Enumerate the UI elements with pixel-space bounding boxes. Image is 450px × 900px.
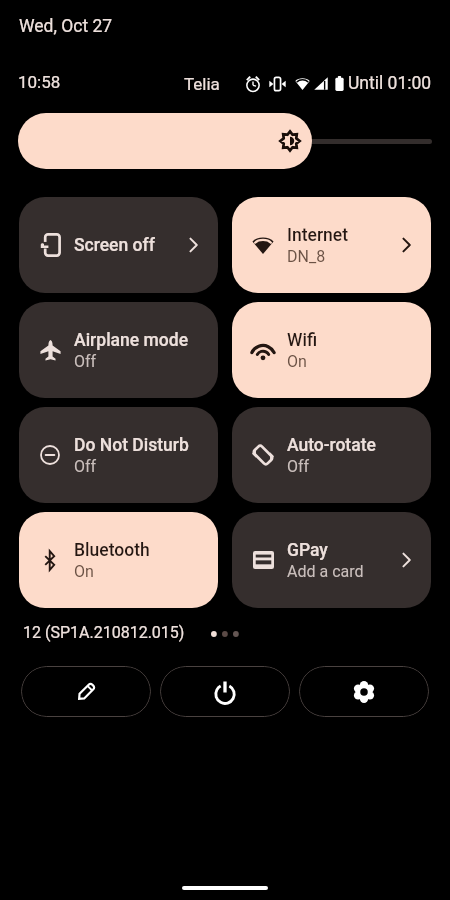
- staticText: Wed, Oct 27: [19, 16, 113, 37]
- button[interactable]: Bluetooth: [19, 512, 218, 608]
- button[interactable]: Wifi: [232, 302, 431, 398]
- staticText: Airplane mode: [74, 330, 189, 351]
- staticText: Off: [74, 352, 97, 371]
- button[interactable]: Airplane mode: [19, 302, 218, 398]
- staticText: Telia: [184, 74, 220, 94]
- staticText: Auto-rotate: [287, 435, 376, 456]
- button[interactable]: Internet: [232, 197, 431, 293]
- staticText: Off: [287, 457, 310, 476]
- staticText: Do Not Disturb: [74, 435, 189, 456]
- staticText: Add a card: [287, 562, 364, 581]
- button[interactable]: Screen off: [19, 197, 218, 293]
- button[interactable]: settings: [299, 666, 429, 717]
- staticText: Off: [74, 457, 97, 476]
- button[interactable]: Do Not Disturb: [19, 407, 218, 503]
- staticText: Until 01:00: [348, 73, 432, 94]
- staticText: DN_8: [287, 247, 326, 266]
- staticText: Screen off: [74, 235, 155, 256]
- staticText: On: [74, 562, 94, 581]
- staticText: Bluetooth: [74, 540, 150, 561]
- staticText: Internet: [287, 225, 348, 246]
- button[interactable]: [18, 113, 432, 169]
- button[interactable]: edit: [21, 666, 151, 717]
- staticText: On: [287, 352, 307, 371]
- button[interactable]: GPay: [232, 512, 431, 608]
- button[interactable]: power: [160, 666, 290, 717]
- staticText: 12 (SP1A.210812.015): [23, 623, 185, 642]
- staticText: Wifi: [287, 330, 318, 351]
- staticText: 10:58: [18, 72, 61, 92]
- staticText: GPay: [287, 540, 328, 561]
- button[interactable]: Auto-rotate: [232, 407, 431, 503]
